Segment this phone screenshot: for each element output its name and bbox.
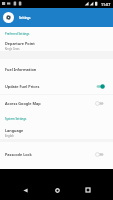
button[interactable]: Language (0, 126, 113, 139)
staticText: Preferred Settings (5, 32, 30, 36)
button[interactable]: Back (18, 183, 32, 197)
button[interactable]: Passcode Lock (0, 142, 113, 166)
staticText: Passcode Lock (5, 152, 95, 157)
button[interactable]: App logo (3, 12, 14, 23)
button[interactable]: Home (50, 183, 64, 197)
staticText: Fuel Information (5, 67, 37, 72)
staticText: 11:07 (101, 2, 111, 7)
staticText: English (5, 134, 14, 138)
staticText: Update Fuel Prices (5, 84, 95, 89)
staticText: System Settings (5, 117, 27, 121)
staticText: Language (5, 128, 24, 133)
button[interactable]: Fuel Information (0, 59, 113, 79)
button[interactable]: Departure Point (0, 40, 113, 51)
button[interactable]: Access Google Map (0, 95, 113, 112)
staticText: King's Cross (5, 47, 20, 51)
button[interactable]: Update Fuel Prices (0, 79, 113, 94)
staticText: Settings (19, 16, 31, 20)
staticText: Access Google Map (5, 101, 95, 106)
staticText: Departure Point (5, 41, 35, 46)
button[interactable]: Recent apps (81, 183, 95, 197)
